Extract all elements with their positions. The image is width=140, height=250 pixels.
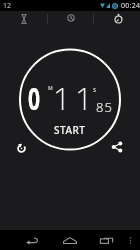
staticText: M (48, 85, 53, 92)
button[interactable]: Timer (0, 11, 47, 36)
staticText: 0 (28, 77, 40, 119)
button[interactable]: START (48, 122, 92, 138)
staticText: 1 (75, 77, 93, 119)
staticText: 85 (96, 98, 113, 116)
staticText: 12 (3, 1, 12, 11)
button[interactable]: Recents (92, 230, 120, 250)
button[interactable]: Back (18, 230, 46, 250)
staticText: 00:24 (121, 1, 140, 11)
staticText: START (54, 123, 86, 137)
button[interactable]: Stopwatch (94, 11, 140, 36)
staticText: s (93, 85, 97, 94)
button[interactable]: More options (126, 230, 134, 250)
button[interactable]: Clock (47, 11, 94, 36)
button[interactable]: Share (107, 137, 127, 157)
staticText: 1 (53, 77, 71, 119)
button[interactable]: Home (56, 230, 84, 250)
button[interactable]: Reset (11, 138, 31, 158)
